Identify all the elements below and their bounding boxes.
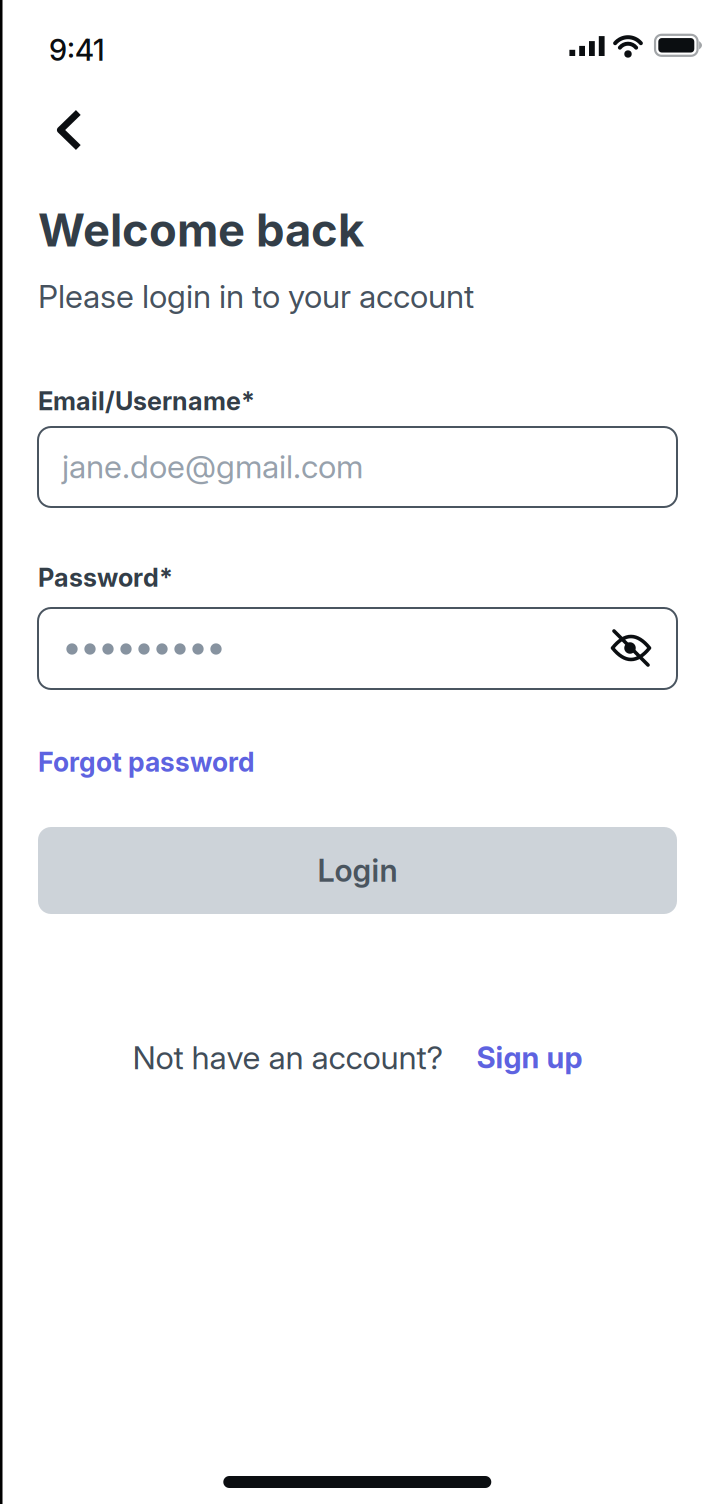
button[interactable]: Show password [605,621,657,673]
staticText: Please login in to your account [38,277,474,315]
staticText: jane.doe@gmail.com [62,448,363,485]
staticText: Forgot password [38,746,255,778]
button[interactable]: Login [38,827,677,914]
staticText: Password* [38,563,173,592]
button[interactable]: Forgot password [38,746,255,778]
staticText: Not have an account? [132,1039,443,1076]
staticText: Welcome back [38,203,364,257]
staticText: 9:41 [49,33,105,67]
button[interactable]: Sign up [476,1040,582,1075]
staticText: Sign up [476,1040,582,1075]
staticText: Login [317,852,397,889]
button[interactable]: Back [36,91,102,168]
staticText: Email/Username* [38,386,255,416]
